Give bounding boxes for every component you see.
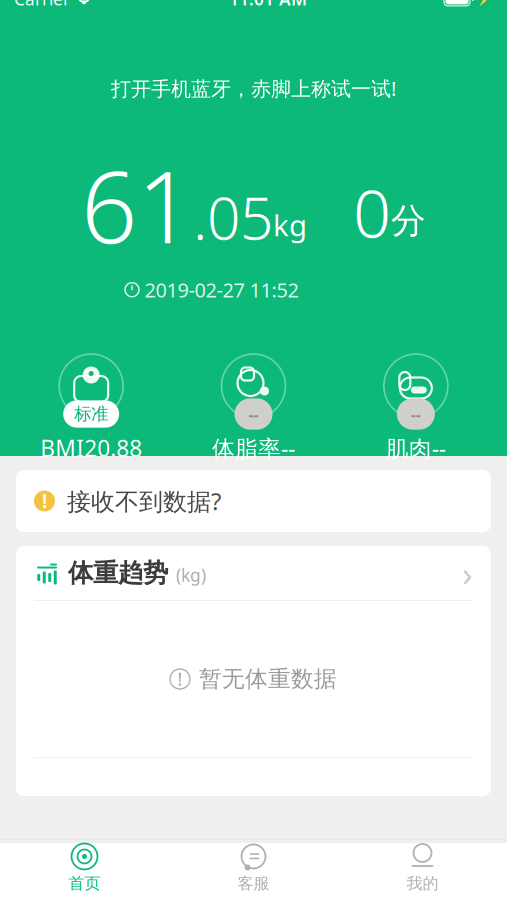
staticText: Carrier bbox=[14, 0, 70, 10]
staticText: 我的 bbox=[406, 873, 438, 893]
staticText: 暂无体重数据 bbox=[199, 665, 337, 693]
staticText: -- bbox=[248, 403, 258, 425]
staticText: 客服 bbox=[237, 873, 269, 893]
button[interactable]: 体重趋势 bbox=[16, 546, 491, 600]
button[interactable]: -- bbox=[335, 347, 497, 463]
staticText: 体脂率-- bbox=[212, 433, 295, 463]
staticText: 打开手机蓝牙，赤脚上称试一试! bbox=[111, 75, 396, 101]
button[interactable]: -- bbox=[172, 347, 335, 463]
staticText: 分 bbox=[391, 200, 426, 242]
button[interactable]: 客服 bbox=[169, 835, 338, 900]
staticText: -- bbox=[411, 403, 421, 425]
staticText: 体重趋势 bbox=[68, 557, 168, 588]
button[interactable]: ! bbox=[16, 470, 491, 532]
staticText: 接收不到数据? bbox=[67, 485, 221, 517]
button[interactable]: 我的 bbox=[338, 835, 507, 900]
staticText: ! bbox=[42, 489, 47, 513]
staticText: ! bbox=[177, 667, 182, 690]
staticText: kg bbox=[273, 205, 307, 244]
staticText: › bbox=[462, 550, 473, 596]
staticText: (kg) bbox=[176, 563, 206, 586]
staticText: 11:01 AM bbox=[229, 0, 307, 10]
staticText: 2019-02-27 11:52 bbox=[144, 276, 298, 303]
staticText: 标准 bbox=[74, 403, 108, 425]
staticText: 首页 bbox=[68, 873, 100, 893]
staticText: BMI20.88 bbox=[40, 433, 142, 463]
staticText: ⚡ bbox=[476, 0, 493, 6]
button[interactable]: 标准 bbox=[10, 347, 172, 463]
staticText: 0 bbox=[353, 168, 391, 256]
staticText: .05 bbox=[193, 178, 273, 256]
button[interactable]: 首页 bbox=[0, 835, 169, 900]
staticText: 61 bbox=[81, 139, 193, 270]
staticText: 肌肉-- bbox=[386, 433, 446, 463]
